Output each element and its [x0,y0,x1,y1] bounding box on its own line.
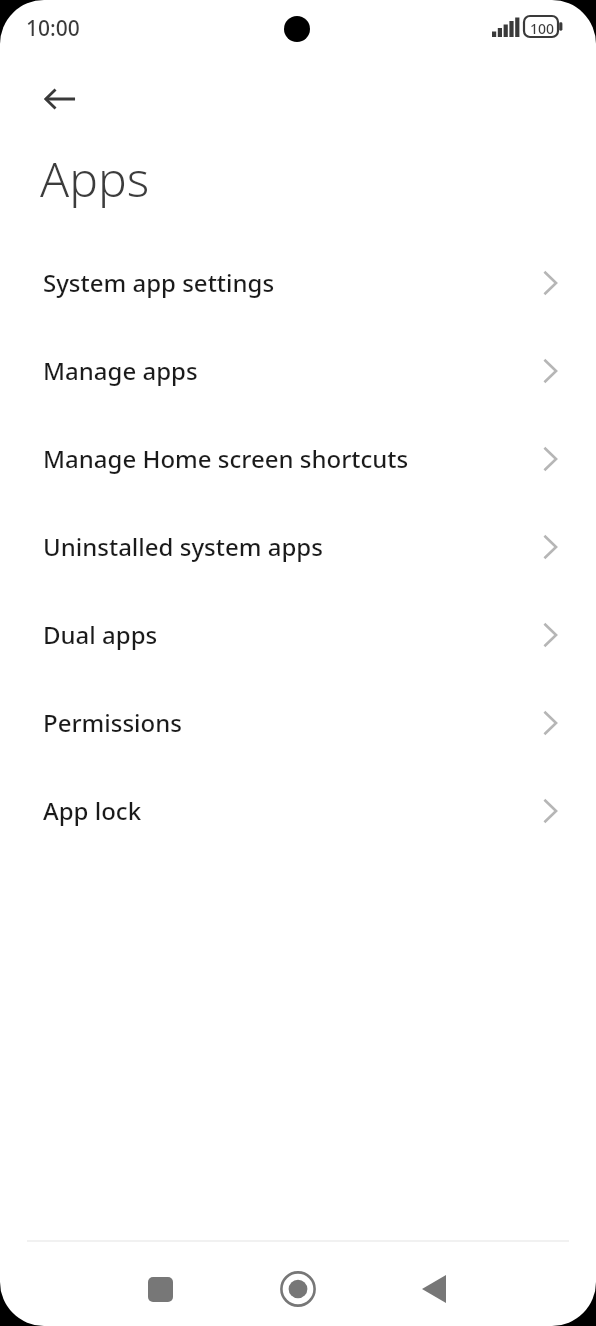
button[interactable]: Back [28,67,92,131]
staticText: 100 [526,19,558,38]
staticText: Manage Home screen shortcuts [43,442,409,475]
staticText: Dual apps [43,618,158,651]
button[interactable]: Recent apps [130,1259,190,1319]
staticText: 10:00 [26,14,80,43]
staticText: Uninstalled system apps [43,530,323,563]
staticText: System app settings [43,266,275,299]
button[interactable]: Dual apps [0,590,596,678]
button[interactable]: System app settings [0,238,596,326]
staticText: Permissions [43,706,182,739]
staticText: App lock [43,794,142,827]
button[interactable]: Uninstalled system apps [0,502,596,590]
button[interactable]: Back [404,1259,464,1319]
staticText: Manage apps [43,354,198,387]
button[interactable]: Manage apps [0,326,596,414]
button[interactable]: Home [268,1259,328,1319]
button[interactable]: Permissions [0,678,596,766]
button[interactable]: App lock [0,766,596,854]
button[interactable]: Manage Home screen shortcuts [0,414,596,502]
staticText: Apps [40,146,150,211]
